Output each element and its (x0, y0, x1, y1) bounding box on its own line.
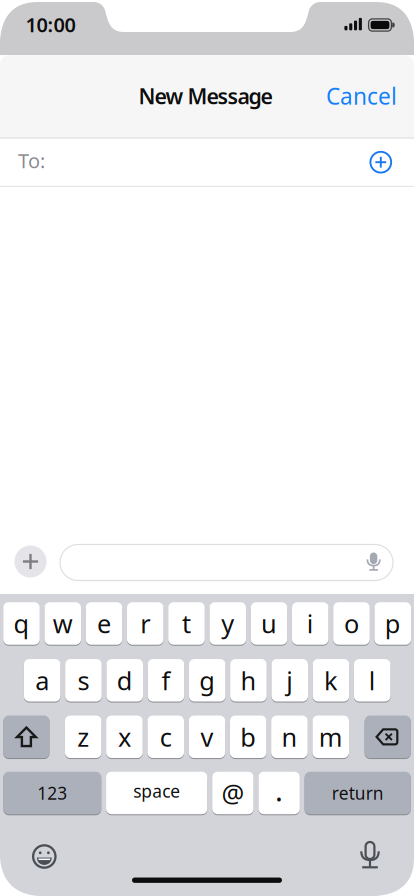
staticText: New Message (138, 82, 272, 110)
button[interactable]: h (230, 658, 267, 702)
staticText: . (275, 770, 283, 809)
staticText: h (240, 663, 256, 697)
button[interactable]: u (251, 601, 287, 646)
staticText: space (133, 779, 180, 802)
button[interactable]: b (230, 714, 266, 759)
staticText: return (332, 781, 384, 804)
button[interactable]: v (189, 714, 225, 759)
button[interactable]: @ (212, 771, 254, 815)
staticText: j (286, 663, 293, 697)
staticText: g (199, 663, 215, 697)
staticText: s (77, 663, 89, 697)
staticText: n (281, 720, 297, 754)
button[interactable]: r (127, 601, 164, 646)
button[interactable]: g (189, 658, 225, 702)
button[interactable]: Delete (365, 714, 411, 759)
button[interactable]: 123 (3, 771, 101, 815)
button[interactable]: Dictate (358, 551, 390, 575)
staticText: l (369, 663, 376, 697)
button[interactable]: Dictation (348, 833, 392, 877)
button[interactable]: x (106, 714, 143, 759)
staticText: y (221, 607, 234, 640)
staticText: Cancel (326, 81, 397, 111)
button[interactable]: w (44, 601, 81, 646)
button[interactable]: i (292, 601, 328, 646)
button[interactable]: Emoji (22, 834, 66, 878)
button[interactable]: p (374, 601, 411, 646)
staticText: k (324, 663, 338, 697)
staticText: v (200, 720, 213, 754)
staticText: To: (18, 147, 45, 174)
button[interactable]: Shift (3, 714, 49, 759)
button[interactable]: space (106, 771, 207, 815)
button[interactable]: Add attachment (14, 545, 46, 577)
button[interactable]: q (3, 601, 40, 646)
staticText: u (261, 607, 277, 640)
staticText: r (140, 607, 150, 640)
button[interactable]: l (354, 658, 390, 702)
button[interactable]: k (313, 658, 349, 702)
button[interactable]: f (148, 658, 184, 702)
button[interactable]: e (86, 601, 122, 646)
button[interactable]: Add Contact (364, 145, 398, 179)
button[interactable]: d (106, 658, 143, 702)
staticText: i (307, 607, 314, 640)
button[interactable]: o (333, 601, 370, 646)
staticText: w (53, 607, 73, 640)
staticText: m (319, 720, 343, 754)
staticText: 10:00 (25, 11, 75, 38)
button[interactable]: z (65, 714, 101, 759)
staticText: z (77, 720, 89, 754)
button[interactable]: m (312, 714, 349, 759)
staticText: d (117, 663, 133, 697)
staticText: p (385, 607, 401, 640)
staticText: t (182, 607, 191, 640)
staticText: o (344, 607, 359, 640)
button[interactable]: j (271, 658, 308, 702)
staticText: @ (221, 776, 244, 810)
button[interactable]: return (305, 771, 411, 815)
button[interactable]: Cancel (315, 74, 407, 118)
button[interactable]: c (147, 714, 184, 759)
button[interactable]: t (168, 601, 205, 646)
staticText: q (13, 607, 29, 640)
staticText: f (161, 663, 170, 697)
button[interactable]: a (24, 658, 60, 702)
staticText: x (118, 720, 131, 754)
button[interactable]: Message (60, 544, 393, 580)
button[interactable]: . (258, 771, 300, 815)
button[interactable]: y (209, 601, 246, 646)
staticText: a (35, 663, 49, 697)
staticText: b (240, 720, 256, 754)
button[interactable]: n (271, 714, 308, 759)
staticText: c (160, 720, 172, 754)
button[interactable]: s (65, 658, 102, 702)
staticText: e (97, 607, 111, 640)
staticText: 123 (37, 781, 67, 804)
